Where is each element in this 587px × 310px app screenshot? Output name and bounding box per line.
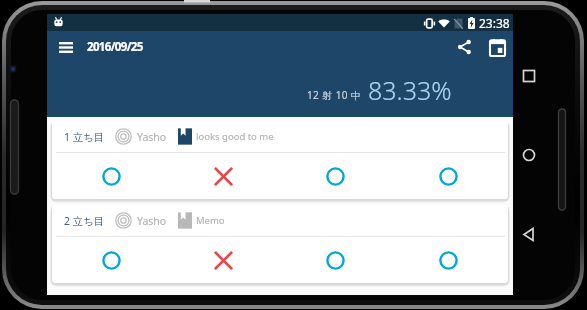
button[interactable] <box>167 237 279 283</box>
button[interactable]: Pick date <box>481 31 513 63</box>
staticText: Yasho <box>137 214 167 228</box>
button[interactable] <box>392 237 505 283</box>
staticText: 1 立ち目 <box>64 130 105 144</box>
button[interactable] <box>279 153 392 199</box>
button[interactable]: Home <box>519 145 539 165</box>
staticText: 83.33% <box>368 73 452 107</box>
button[interactable] <box>167 153 279 199</box>
button[interactable]: Back <box>519 224 539 244</box>
staticText: 2 立ち目 <box>64 214 105 228</box>
staticText: 23:38 <box>479 15 510 31</box>
staticText: Memo <box>196 214 225 227</box>
staticText: 12 射 10 中 <box>307 88 362 102</box>
staticText: 2016/09/25 <box>87 39 143 55</box>
button[interactable]: Open navigation drawer <box>47 31 85 63</box>
button[interactable] <box>55 153 167 199</box>
button[interactable]: 2 立ち目 <box>52 205 508 283</box>
button[interactable]: Share <box>448 31 480 63</box>
button[interactable] <box>392 153 505 199</box>
button[interactable] <box>279 237 392 283</box>
button[interactable]: Recent apps <box>519 66 539 86</box>
button[interactable] <box>55 237 167 283</box>
button[interactable]: 1 立ち目 <box>52 121 508 199</box>
staticText: Yasho <box>137 130 167 144</box>
staticText: looks good to me <box>196 130 274 143</box>
